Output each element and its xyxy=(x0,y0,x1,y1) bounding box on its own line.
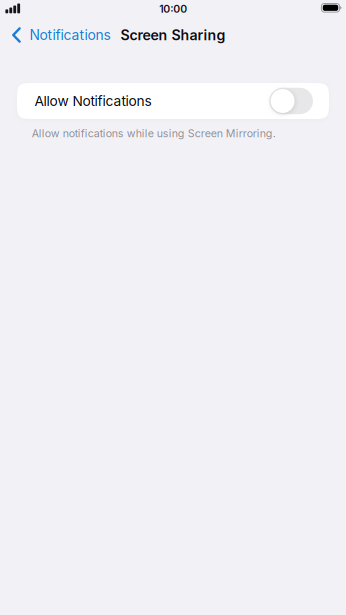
button[interactable]: Notifications xyxy=(0,21,110,49)
button[interactable]: Allow Notifications xyxy=(17,83,329,119)
staticText: 10:00 xyxy=(159,3,187,15)
staticText: Screen Sharing xyxy=(120,26,225,43)
staticText: Allow Notifications xyxy=(34,93,151,109)
staticText: Allow notifications while using Screen M… xyxy=(32,127,276,140)
staticText: Notifications xyxy=(29,27,110,43)
